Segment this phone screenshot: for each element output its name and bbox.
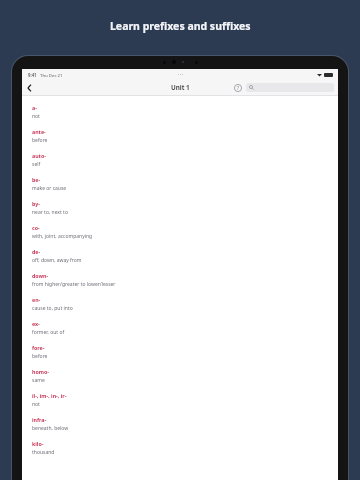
staticText: a- bbox=[32, 104, 37, 111]
button[interactable]: Search bbox=[246, 83, 334, 92]
button[interactable]: be- bbox=[22, 172, 338, 196]
staticText: cause to, put into bbox=[32, 305, 73, 312]
staticText: down- bbox=[32, 272, 49, 279]
staticText: make or cause bbox=[32, 185, 67, 192]
button[interactable]: kilo- bbox=[22, 436, 338, 460]
staticText: beneath, below bbox=[32, 425, 69, 432]
staticText: self bbox=[32, 161, 41, 168]
staticText: with, joint, accompanying bbox=[32, 233, 93, 240]
staticText: thousand bbox=[32, 449, 55, 456]
staticText: same bbox=[32, 377, 45, 384]
staticText: Learn prefixes and suffixes bbox=[110, 19, 251, 33]
staticText: kilo- bbox=[32, 440, 44, 447]
button[interactable]: de- bbox=[22, 244, 338, 268]
staticText: auto- bbox=[32, 152, 46, 159]
staticText: ? bbox=[237, 85, 239, 91]
staticText: ex- bbox=[32, 320, 40, 327]
staticText: Thu Dec 21 bbox=[40, 72, 63, 78]
button[interactable]: ex- bbox=[22, 316, 338, 340]
staticText: before bbox=[32, 353, 48, 360]
staticText: co- bbox=[32, 224, 40, 231]
button[interactable]: co- bbox=[22, 220, 338, 244]
staticText: near to, next to bbox=[32, 209, 68, 216]
staticText: 9:41 bbox=[28, 72, 37, 78]
button[interactable]: by- bbox=[22, 196, 338, 220]
staticText: off, down, away from bbox=[32, 257, 82, 264]
staticText: il-, im-, in-, ir- bbox=[32, 392, 67, 399]
staticText: former, out of bbox=[32, 329, 65, 336]
staticText: infra- bbox=[32, 416, 47, 423]
button[interactable]: en- bbox=[22, 292, 338, 316]
staticText: fore- bbox=[32, 344, 45, 351]
button[interactable]: a- bbox=[22, 100, 338, 124]
button[interactable]: Back bbox=[22, 80, 37, 95]
button[interactable]: down- bbox=[22, 268, 338, 292]
button[interactable]: Help bbox=[232, 82, 243, 93]
button[interactable]: homo- bbox=[22, 364, 338, 388]
button[interactable]: fore- bbox=[22, 340, 338, 364]
button[interactable]: il-, im-, in-, ir- bbox=[22, 388, 338, 412]
button[interactable]: ante- bbox=[22, 124, 338, 148]
staticText: be- bbox=[32, 176, 41, 183]
staticText: de- bbox=[32, 248, 41, 255]
button[interactable]: infra- bbox=[22, 412, 338, 436]
staticText: ante- bbox=[32, 128, 46, 135]
staticText: en- bbox=[32, 296, 41, 303]
staticText: by- bbox=[32, 200, 40, 207]
staticText: not bbox=[32, 401, 40, 408]
staticText: before bbox=[32, 137, 48, 144]
staticText: not bbox=[32, 113, 40, 120]
staticText: homo- bbox=[32, 368, 49, 375]
button[interactable]: auto- bbox=[22, 148, 338, 172]
staticText: Unit 1 bbox=[171, 83, 190, 92]
staticText: from higher/greater to lower/lesser bbox=[32, 281, 116, 288]
